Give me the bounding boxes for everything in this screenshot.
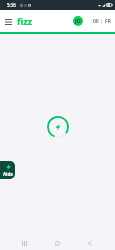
staticText: JO xyxy=(75,18,81,25)
button[interactable]: Menu xyxy=(2,15,15,28)
button[interactable]: Recent apps xyxy=(16,235,33,250)
staticText: 00 xyxy=(93,18,99,25)
button[interactable]: Aide xyxy=(0,161,15,179)
staticText: fizz xyxy=(17,15,32,27)
button[interactable]: Home xyxy=(49,235,66,250)
staticText: FR xyxy=(105,18,111,25)
staticText: Aide xyxy=(3,171,13,177)
button[interactable]: 00 xyxy=(92,16,112,27)
staticText: 5:36 xyxy=(7,2,16,8)
button[interactable]: Account xyxy=(73,16,83,26)
button[interactable]: Back xyxy=(81,235,98,250)
staticText: | xyxy=(99,18,105,25)
